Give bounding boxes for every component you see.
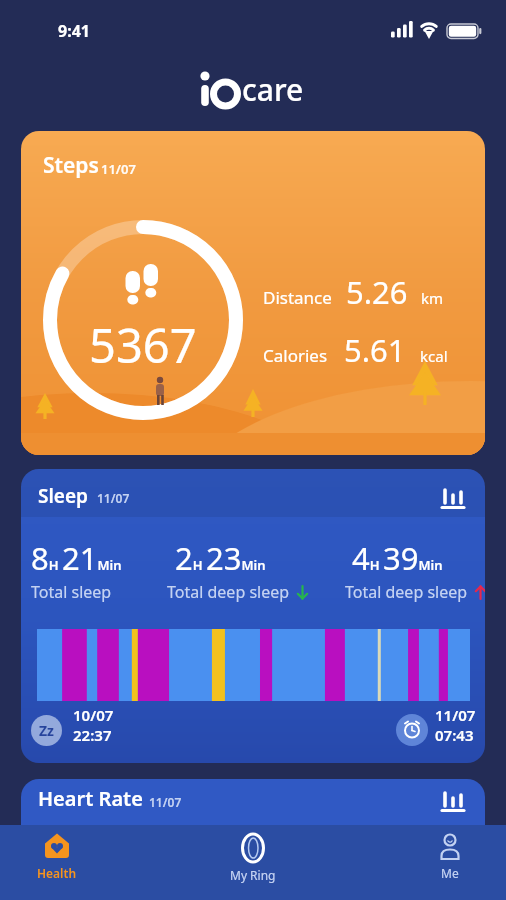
staticText: Distance xyxy=(263,286,332,309)
staticText: 10/07 22:37 xyxy=(73,705,114,745)
staticText: 11/07 xyxy=(101,160,136,178)
staticText: kcal xyxy=(420,346,448,366)
staticText: Total deep sleep xyxy=(345,581,468,603)
staticText: 9:41 xyxy=(58,20,90,42)
staticText: My Ring xyxy=(230,867,276,883)
button[interactable]: Heart Rate xyxy=(21,779,485,839)
staticText: 11/07 xyxy=(97,490,130,506)
staticText: 2H 23Min xyxy=(175,537,266,579)
staticText: Total deep sleep xyxy=(167,581,290,603)
button[interactable]: Me xyxy=(415,833,485,897)
button[interactable]: Steps xyxy=(21,131,485,455)
staticText: 5.61 xyxy=(344,329,406,371)
staticText: Steps xyxy=(43,151,99,180)
staticText: 5.26 xyxy=(346,271,408,313)
button[interactable]: Sleep xyxy=(21,469,485,763)
staticText: Calories xyxy=(263,344,328,367)
staticText: km xyxy=(421,288,444,308)
staticText: 11/07 xyxy=(149,794,182,810)
button[interactable]: Health xyxy=(22,833,92,897)
staticText: care xyxy=(242,69,304,110)
staticText: Total sleep xyxy=(31,581,112,603)
staticText: Zz xyxy=(39,721,55,740)
staticText: 5367 xyxy=(89,313,197,373)
staticText: Me xyxy=(441,865,459,881)
staticText: Heart Rate xyxy=(38,785,143,812)
button[interactable]: My Ring xyxy=(218,833,288,897)
staticText: 4H 39Min xyxy=(352,537,443,579)
staticText: 11/07 07:43 xyxy=(435,705,476,745)
staticText: 8H 21Min xyxy=(31,537,122,579)
staticText: Health xyxy=(37,865,77,881)
staticText: Sleep xyxy=(38,483,88,509)
